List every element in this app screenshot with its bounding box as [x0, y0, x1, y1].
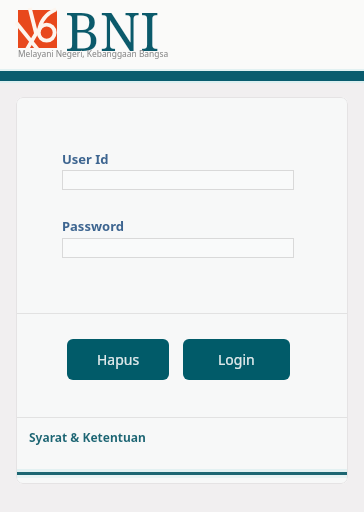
- staticText: Syarat & Ketentuan: [29, 429, 146, 445]
- button[interactable]: [62, 170, 294, 190]
- staticText: Login: [218, 350, 255, 369]
- staticText: Password: [62, 217, 124, 235]
- button[interactable]: Login: [183, 339, 290, 380]
- button[interactable]: Syarat & Ketentuan: [22, 424, 153, 450]
- staticText: User Id: [62, 150, 109, 168]
- staticText: Hapus: [97, 350, 140, 369]
- button[interactable]: Hapus: [67, 339, 169, 380]
- staticText: BNI: [65, 0, 160, 65]
- button[interactable]: [62, 238, 294, 258]
- staticText: Melayani Negeri, Kebanggaan Bangsa: [18, 48, 169, 59]
